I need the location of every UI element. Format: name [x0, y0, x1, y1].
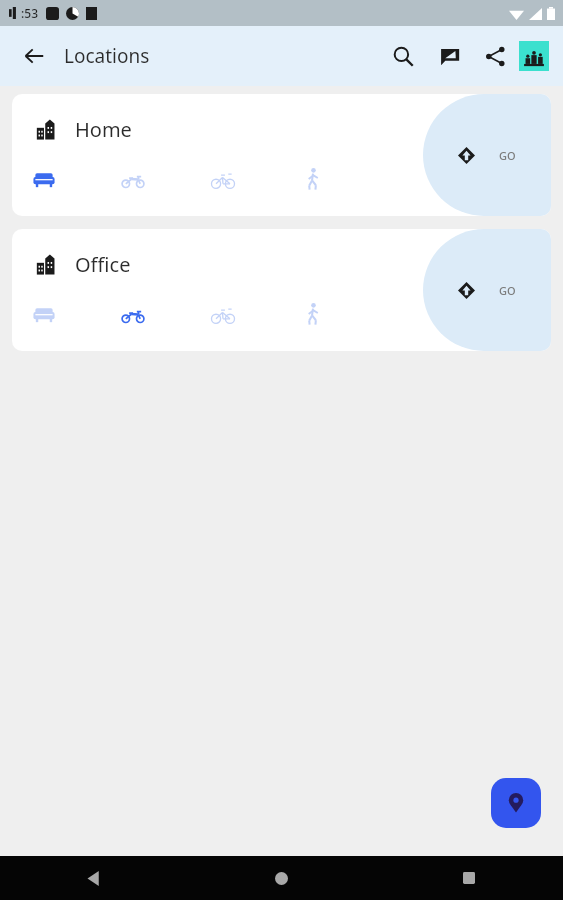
- button[interactable]: Go: [423, 94, 551, 216]
- staticText: Locations: [64, 43, 150, 69]
- button[interactable]: Back: [0, 856, 187, 900]
- button[interactable]: Back: [12, 34, 56, 78]
- button[interactable]: Group: [519, 41, 549, 71]
- button[interactable]: Walk: [301, 166, 391, 192]
- button[interactable]: Car: [32, 301, 121, 327]
- button[interactable]: Share: [473, 34, 517, 78]
- button[interactable]: Go: [12, 94, 551, 216]
- button[interactable]: Recents: [375, 856, 563, 900]
- button[interactable]: Bicycle: [211, 301, 301, 327]
- staticText: Home: [75, 116, 132, 143]
- button[interactable]: Add location: [491, 778, 541, 828]
- staticText: GO: [499, 148, 516, 163]
- staticText: Office: [75, 251, 131, 278]
- button[interactable]: Motorcycle: [121, 301, 211, 327]
- button[interactable]: Bicycle: [211, 166, 301, 192]
- button[interactable]: Home: [187, 856, 375, 900]
- button[interactable]: Car: [32, 166, 121, 192]
- staticText: :53: [21, 5, 38, 21]
- button[interactable]: Report: [427, 34, 471, 78]
- staticText: GO: [499, 283, 516, 298]
- button[interactable]: Walk: [301, 301, 391, 327]
- button[interactable]: Search: [381, 34, 425, 78]
- button[interactable]: Go: [12, 229, 551, 351]
- button[interactable]: Motorcycle: [121, 166, 211, 192]
- button[interactable]: Go: [423, 229, 551, 351]
